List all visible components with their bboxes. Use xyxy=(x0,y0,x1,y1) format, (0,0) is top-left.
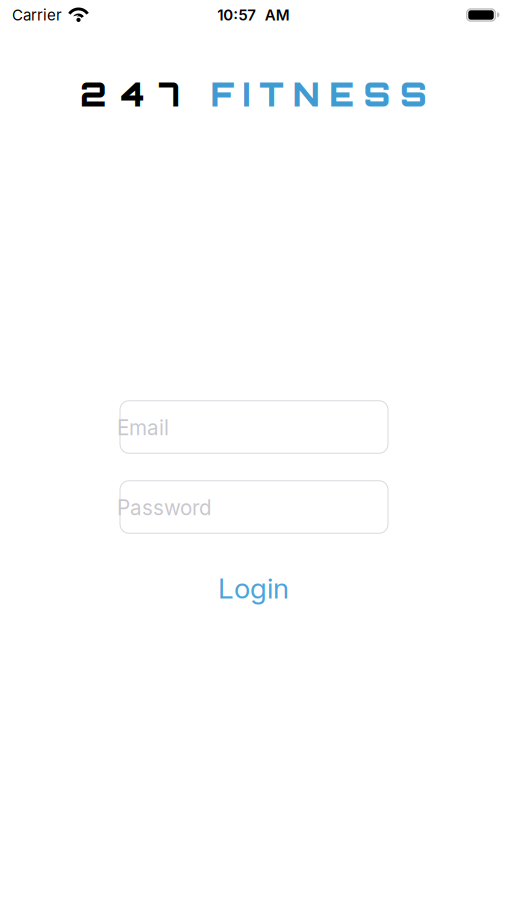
staticText: 10:57 xyxy=(217,6,256,24)
staticText: AM xyxy=(265,6,290,24)
staticText: Email xyxy=(117,415,169,440)
staticText: T xyxy=(259,74,283,114)
staticText: S xyxy=(400,74,427,114)
staticText: Password xyxy=(117,495,212,520)
staticText: Login xyxy=(218,571,289,605)
staticText: N xyxy=(293,74,320,114)
staticText: E xyxy=(329,74,354,114)
staticText: F xyxy=(211,74,234,114)
staticText: S xyxy=(364,74,391,114)
staticText: Carrier xyxy=(12,6,62,24)
button[interactable]: Login xyxy=(218,571,289,605)
staticText: 7 xyxy=(159,74,180,114)
button[interactable]: Email xyxy=(119,400,388,454)
staticText: 2 xyxy=(80,74,107,114)
staticText: 4 xyxy=(121,74,145,114)
button[interactable]: Password xyxy=(119,480,388,534)
staticText: I xyxy=(243,74,250,114)
